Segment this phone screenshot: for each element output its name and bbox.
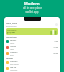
staticText: Total balance bbox=[7, 29, 17, 31]
staticText: Spotify bbox=[10, 39, 17, 42]
staticText: -4.99 bbox=[54, 40, 58, 42]
staticText: wallet app bbox=[25, 10, 39, 14]
staticText: Hello, Anna bbox=[6, 22, 17, 25]
staticText: Transfer bbox=[10, 60, 18, 63]
staticText: Good morning bbox=[6, 25, 17, 27]
staticText: Services bbox=[6, 57, 13, 59]
button[interactable]: Netflix bbox=[6, 44, 58, 50]
staticText: all in one place bbox=[23, 6, 42, 10]
button[interactable]: Total balance bbox=[6, 28, 58, 35]
staticText: Transactions bbox=[6, 36, 17, 38]
button[interactable]: Top up bbox=[6, 65, 58, 71]
button[interactable]: Spotify bbox=[6, 38, 58, 44]
staticText: Shop bbox=[10, 54, 14, 56]
staticText: Netflix bbox=[10, 45, 17, 48]
staticText: Send money bbox=[10, 63, 19, 65]
staticText: Add funds bbox=[10, 69, 18, 71]
staticText: Music bbox=[10, 42, 15, 44]
staticText: Modern bbox=[24, 1, 40, 6]
staticText: Video bbox=[10, 48, 14, 50]
staticText: $12,480 bbox=[7, 31, 15, 34]
staticText: -12.99 bbox=[53, 46, 58, 48]
button[interactable]: Profile bbox=[55, 23, 58, 26]
staticText: Amazon bbox=[10, 51, 18, 54]
staticText: -28.50 bbox=[53, 52, 58, 54]
button[interactable]: Amazon bbox=[6, 50, 58, 56]
button[interactable]: Transfer bbox=[6, 59, 58, 65]
staticText: Top up bbox=[10, 66, 17, 69]
